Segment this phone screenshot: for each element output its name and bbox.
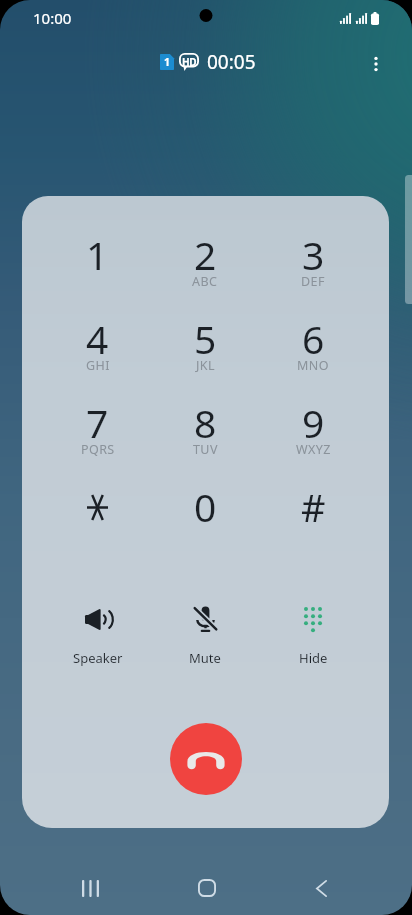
staticText: 8	[194, 396, 217, 449]
button[interactable]: 0	[151, 480, 259, 564]
staticText: 6	[302, 312, 325, 365]
staticText: 4	[86, 312, 109, 365]
staticText: 0	[194, 480, 217, 533]
button[interactable]: Recent apps	[62, 859, 119, 911]
staticText: MNO	[297, 357, 329, 374]
button[interactable]: 6	[259, 312, 367, 396]
staticText: Mute	[189, 649, 221, 667]
button[interactable]: 1	[44, 228, 151, 312]
button[interactable]: #	[259, 480, 367, 564]
staticText: Speaker	[73, 649, 123, 667]
button[interactable]: 8	[151, 396, 259, 480]
staticText: 7	[86, 396, 109, 449]
staticText: ABC	[192, 273, 218, 290]
button[interactable]: Hide	[259, 599, 367, 671]
button[interactable]: End call	[170, 723, 242, 795]
staticText: 00:05	[207, 49, 256, 75]
staticText: GHI	[86, 357, 110, 374]
staticText: TUV	[193, 441, 218, 458]
staticText: 1	[164, 55, 171, 69]
staticText: 2	[194, 228, 217, 281]
staticText: HD	[182, 55, 196, 69]
staticText: PQRS	[81, 441, 115, 458]
staticText: #	[301, 481, 326, 533]
button[interactable]: 2	[151, 228, 259, 312]
staticText: 9	[302, 396, 325, 449]
button[interactable]: Mute	[151, 599, 259, 671]
button[interactable]: 7	[44, 396, 151, 480]
button[interactable]: Back	[293, 859, 350, 911]
staticText: 3	[302, 228, 325, 281]
staticText: WXYZ	[296, 441, 331, 458]
button[interactable]: Home	[178, 859, 235, 911]
staticText: DEF	[301, 273, 325, 290]
staticText: 10:00	[33, 8, 72, 28]
button[interactable]	[44, 480, 151, 564]
button[interactable]: More options	[360, 48, 392, 80]
button[interactable]: 3	[259, 228, 367, 312]
button[interactable]: 9	[259, 396, 367, 480]
staticText: Hide	[299, 649, 328, 667]
staticText: 5	[194, 312, 217, 365]
staticText: JKL	[196, 357, 215, 374]
button[interactable]: 5	[151, 312, 259, 396]
staticText: 1	[86, 228, 109, 281]
button[interactable]: 4	[44, 312, 151, 396]
button[interactable]: Speaker	[44, 599, 151, 671]
